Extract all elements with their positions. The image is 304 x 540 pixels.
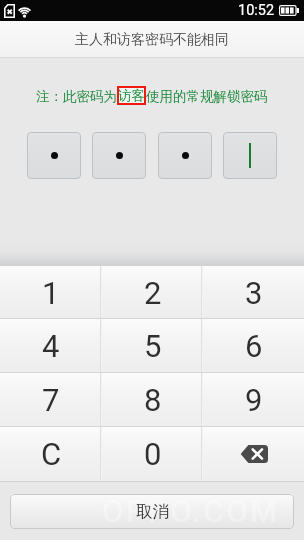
staticText: 访客 bbox=[118, 87, 145, 104]
staticText: C bbox=[41, 436, 62, 472]
staticText: 5 bbox=[144, 328, 162, 364]
button[interactable]: Delete bbox=[203, 427, 304, 481]
staticText: 10:52 bbox=[238, 2, 275, 19]
staticText: OPPO.COM bbox=[102, 494, 280, 528]
button[interactable]: PIN digit bbox=[158, 132, 212, 179]
staticText: 取消 bbox=[136, 501, 169, 522]
button[interactable]: 1 bbox=[0, 266, 102, 319]
button[interactable]: PIN digit bbox=[92, 132, 146, 179]
staticText: 主人和访客密码不能相同 bbox=[75, 31, 229, 49]
staticText: 0 bbox=[144, 436, 162, 472]
button[interactable]: C bbox=[0, 427, 102, 481]
staticText: 6 bbox=[245, 328, 263, 364]
staticText: 9 bbox=[245, 382, 263, 418]
staticText: 7 bbox=[42, 382, 60, 418]
staticText: 2 bbox=[144, 275, 162, 311]
staticText: 使用的常规解锁密码 bbox=[146, 88, 268, 105]
button[interactable]: 2 bbox=[102, 266, 203, 319]
staticText: 注：此密码为 bbox=[36, 88, 117, 105]
button[interactable]: 6 bbox=[203, 319, 304, 373]
button[interactable]: PIN digit bbox=[223, 132, 277, 179]
button[interactable]: OPPO.COM bbox=[10, 494, 294, 529]
button[interactable]: 5 bbox=[102, 319, 203, 373]
button[interactable]: PIN digit bbox=[27, 132, 81, 179]
button[interactable]: 8 bbox=[102, 373, 203, 427]
button[interactable]: 4 bbox=[0, 319, 102, 373]
staticText: 4 bbox=[42, 328, 60, 364]
staticText: 1 bbox=[42, 275, 60, 311]
staticText: 3 bbox=[245, 275, 263, 311]
button[interactable]: 9 bbox=[203, 373, 304, 427]
button[interactable]: 0 bbox=[102, 427, 203, 481]
button[interactable]: 3 bbox=[203, 266, 304, 319]
staticText: 8 bbox=[144, 382, 162, 418]
button[interactable]: 7 bbox=[0, 373, 102, 427]
